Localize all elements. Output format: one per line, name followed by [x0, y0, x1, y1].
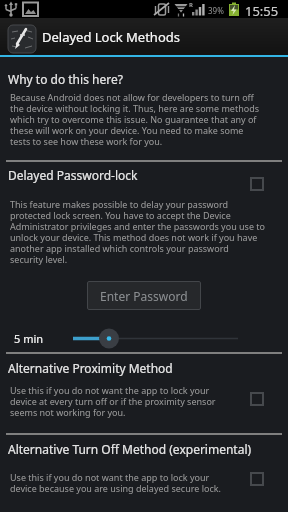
- staticText: Use this if you do not want the app to l…: [10, 471, 221, 495]
- staticText: Alternative Turn Off Method (experimenta…: [8, 441, 252, 457]
- staticText: Because Android does not allow for devel…: [10, 91, 260, 148]
- staticText: Use this if you do not want the app to l…: [10, 384, 216, 419]
- button[interactable]: [250, 392, 264, 406]
- staticText: R: [189, 1, 193, 9]
- button[interactable]: [250, 472, 264, 486]
- staticText: 39%: [208, 5, 224, 16]
- staticText: Why to do this here?: [8, 71, 123, 87]
- staticText: Alternative Proximity Method: [8, 360, 173, 376]
- staticText: This feature makes possible to delay you…: [10, 198, 266, 266]
- staticText: Delayed Password-lock: [8, 167, 138, 183]
- button[interactable]: Enter Password: [87, 281, 201, 310]
- staticText: Delayed Lock Methods: [42, 28, 180, 46]
- staticText: 15:55: [245, 2, 279, 20]
- staticText: 5 min: [14, 331, 44, 346]
- button[interactable]: [250, 177, 264, 191]
- staticText: Enter Password: [100, 288, 188, 304]
